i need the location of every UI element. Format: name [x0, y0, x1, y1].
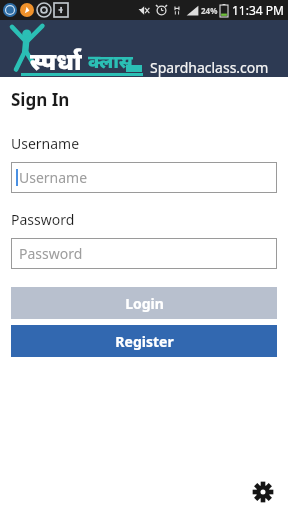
button[interactable]: Register: [11, 325, 277, 357]
staticText: स्पर्धा: [30, 44, 82, 77]
staticText: 24%: [201, 5, 218, 16]
staticText: Username: [11, 134, 80, 153]
button[interactable]: Password: [11, 238, 277, 269]
button[interactable]: Settings: [250, 479, 276, 505]
staticText: Password: [11, 210, 75, 229]
staticText: क्लास: [88, 49, 133, 74]
staticText: 11:34 PM: [232, 2, 284, 18]
staticText: Username: [19, 168, 88, 187]
button[interactable]: Username: [11, 162, 277, 193]
staticText: Sign In: [11, 88, 70, 111]
staticText: Register: [115, 332, 174, 351]
staticText: Password: [19, 244, 83, 263]
button[interactable]: Login: [11, 287, 277, 319]
staticText: Login: [125, 294, 164, 313]
staticText: Spardhaclass.com: [150, 58, 269, 77]
